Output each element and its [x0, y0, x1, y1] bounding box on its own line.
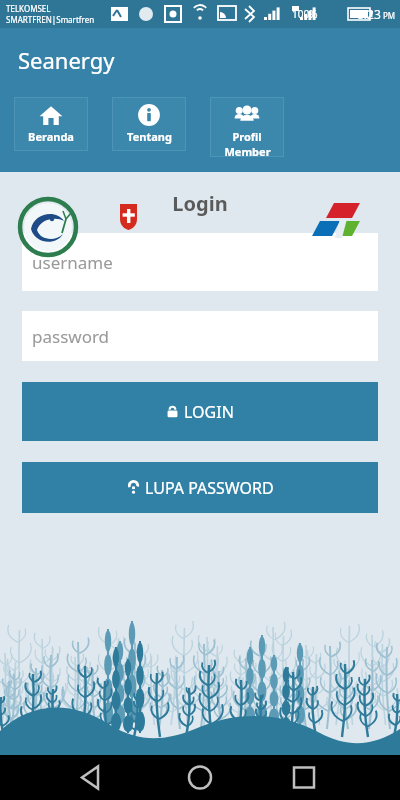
staticText: 8:23: [357, 6, 381, 22]
button[interactable]: Beranda: [14, 97, 88, 151]
button[interactable]: username: [22, 233, 378, 291]
button[interactable]: LOGIN: [22, 382, 378, 441]
staticText: LOGIN: [184, 401, 234, 423]
staticText: Beranda: [28, 129, 74, 144]
staticText: TELKOMSEL: [6, 3, 51, 14]
staticText: username: [32, 251, 113, 274]
staticText: Profil: [232, 129, 262, 144]
staticText: PM: [383, 10, 396, 21]
button[interactable]: Tentang: [112, 97, 186, 151]
staticText: 100%: [292, 7, 318, 21]
staticText: SMARTFREN|Smartfren: [6, 14, 95, 25]
button[interactable]: password: [22, 311, 378, 361]
staticText: password: [32, 325, 110, 348]
staticText: Tentang: [127, 129, 172, 144]
button[interactable]: LUPA PASSWORD: [22, 462, 378, 513]
staticText: Member: [224, 144, 271, 157]
button[interactable]: Profil: [210, 97, 284, 157]
staticText: LUPA PASSWORD: [145, 477, 274, 499]
staticText: Seanergy: [18, 45, 115, 75]
staticText: Login: [0, 190, 400, 217]
